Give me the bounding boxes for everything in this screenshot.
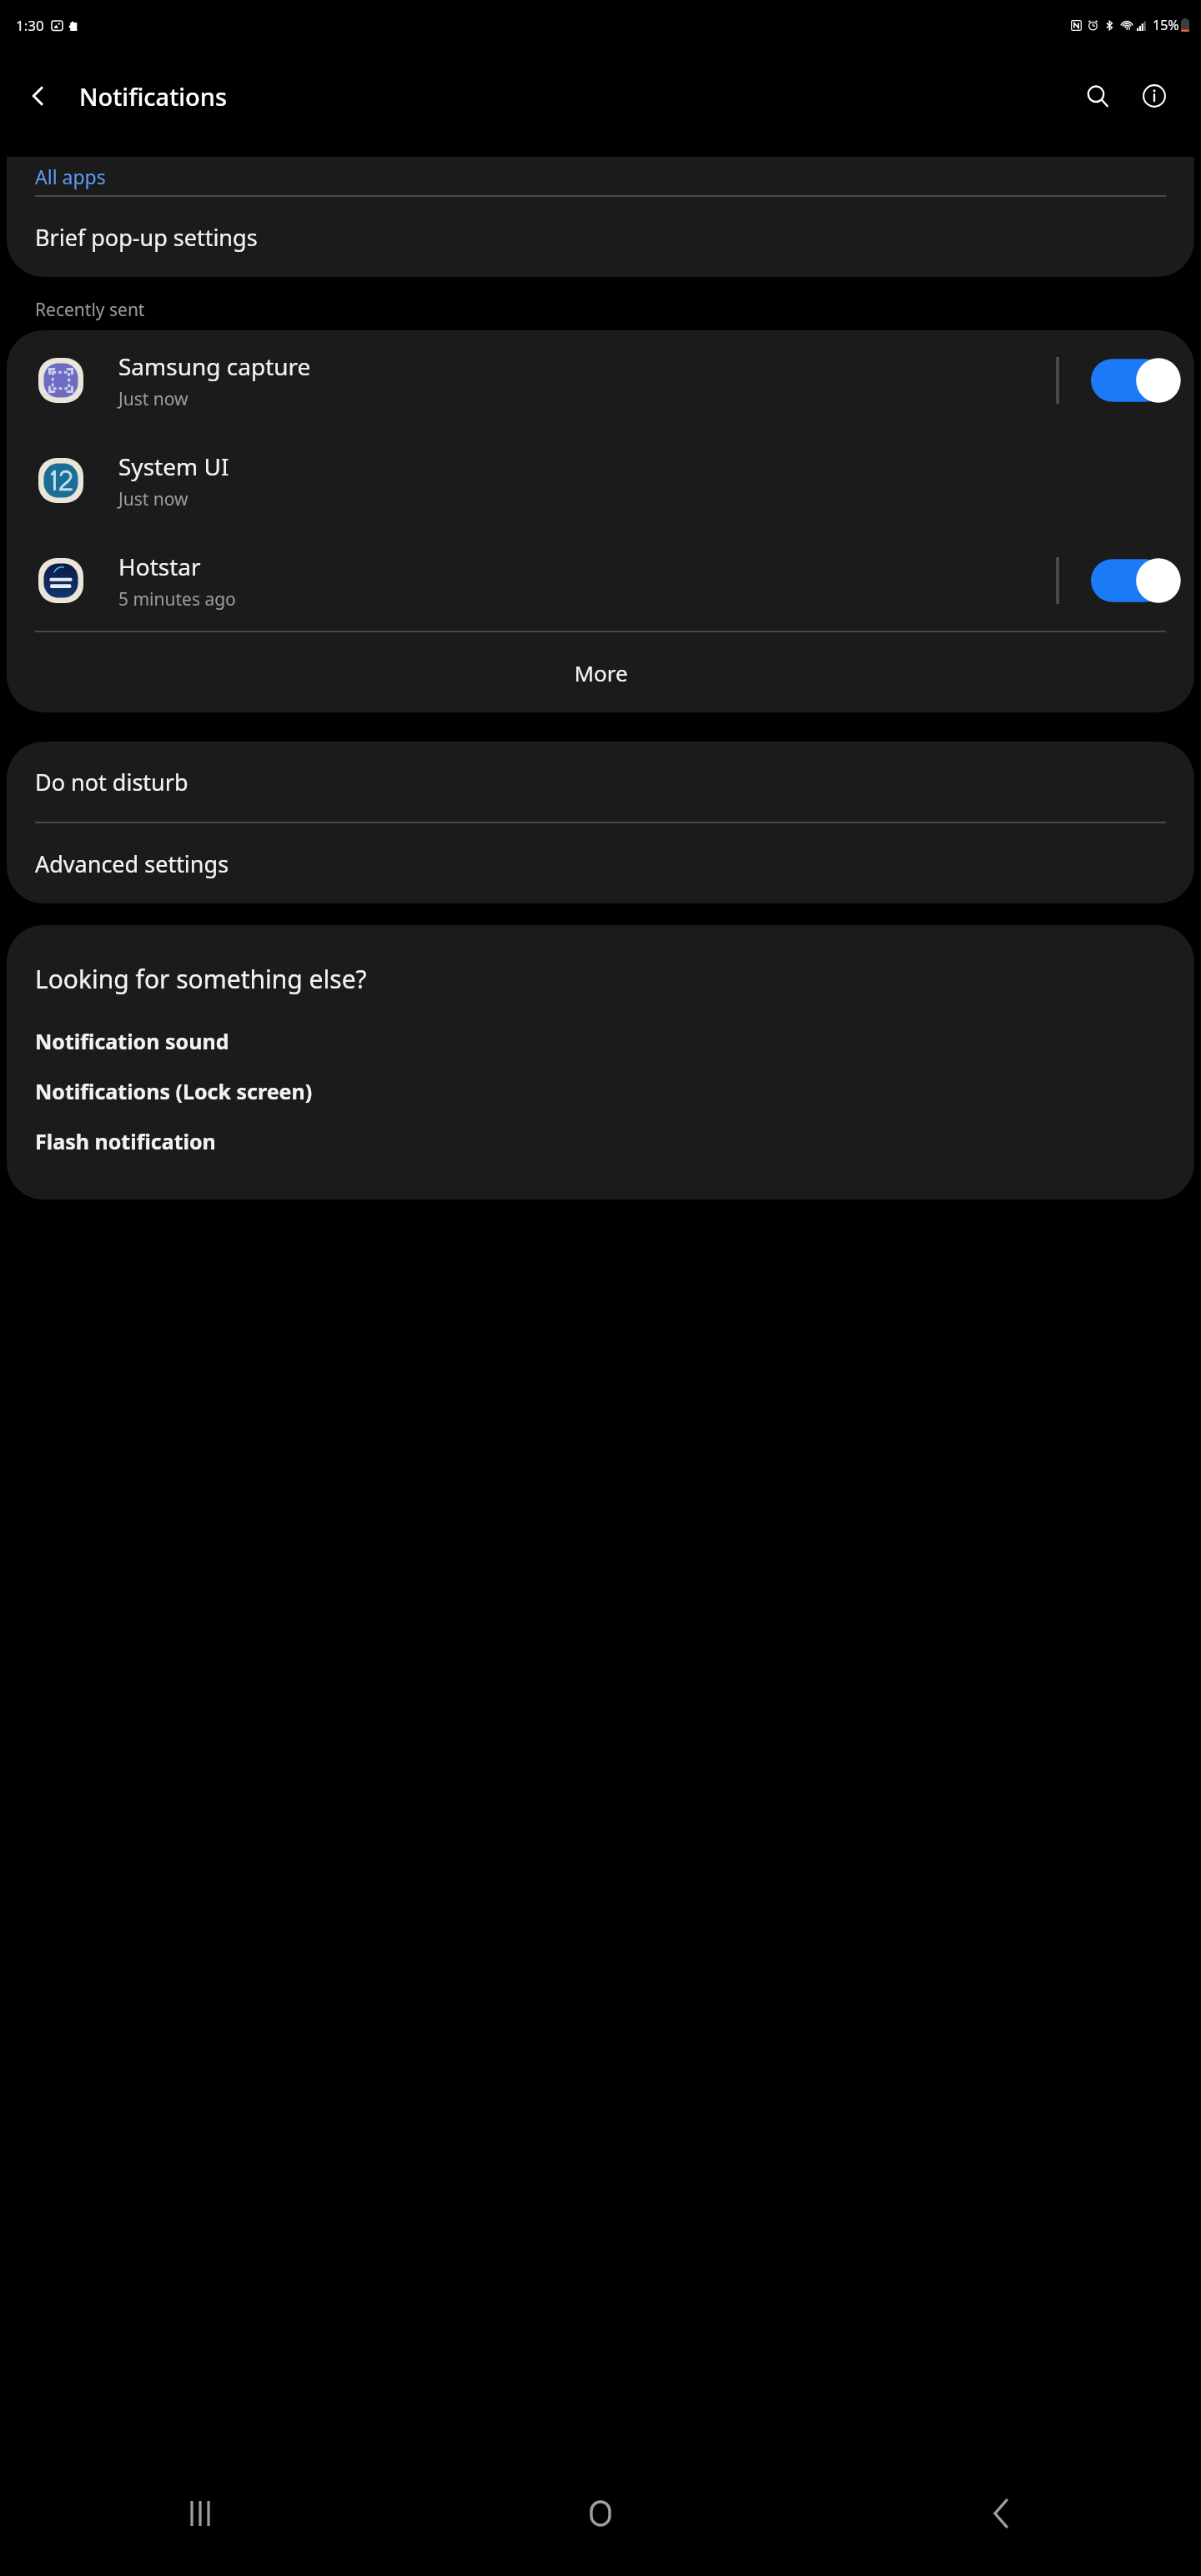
button[interactable]: Notification sound (7, 1016, 1194, 1066)
staticText: Notification sound (35, 1027, 229, 1055)
staticText: Hotstar (118, 551, 201, 582)
button[interactable]: Brief pop-up settings (7, 197, 1194, 277)
staticText: Brief pop-up settings (35, 222, 258, 253)
button[interactable]: Notifications (Lock screen) (7, 1066, 1194, 1116)
button[interactable]: More (7, 632, 1194, 712)
button[interactable]: Toggle notifications for Samsung capture (1091, 353, 1183, 408)
staticText: More (574, 658, 628, 687)
button[interactable]: Hotstar (7, 531, 1194, 631)
button[interactable]: Do not disturb (7, 742, 1194, 822)
staticText: Samsung capture (118, 350, 311, 382)
button[interactable]: Information (1131, 73, 1178, 119)
staticText: System UI (118, 450, 229, 482)
staticText: Flash notification (35, 1127, 216, 1155)
staticText: Notifications (79, 80, 228, 113)
button[interactable]: Flash notification (7, 1116, 1194, 1166)
button[interactable]: Advanced settings (7, 823, 1194, 903)
staticText: Advanced settings (35, 848, 229, 879)
button[interactable]: Samsung capture (7, 330, 1194, 430)
staticText: 5 minutes ago (118, 587, 236, 611)
button[interactable]: Recent apps (0, 2451, 400, 2576)
button[interactable]: Toggle notifications for Hotstar (1091, 553, 1183, 608)
staticText: 15% (1153, 16, 1179, 34)
staticText: Just now (118, 387, 188, 411)
button[interactable]: Search (1074, 73, 1121, 119)
button[interactable]: Home (400, 2451, 801, 2576)
button[interactable]: All apps (7, 157, 1194, 195)
staticText: Just now (118, 487, 188, 511)
staticText: 1:30 (16, 16, 44, 35)
staticText: Looking for something else? (35, 962, 367, 996)
staticText: Recently sent (35, 298, 145, 322)
button[interactable]: Back (17, 74, 60, 118)
button[interactable]: System UI (7, 430, 1194, 531)
staticText: All apps (35, 164, 106, 189)
button[interactable]: Back (801, 2451, 1201, 2576)
staticText: Do not disturb (35, 767, 188, 797)
staticText: Notifications (Lock screen) (35, 1077, 313, 1105)
